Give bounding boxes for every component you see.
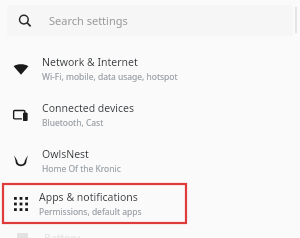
staticText: Bluetooth, Cast xyxy=(42,117,104,129)
button[interactable]: Network and Internet xyxy=(0,46,300,92)
staticText: Home Of the Kronic xyxy=(42,163,121,175)
staticText: Connected devices xyxy=(42,101,135,115)
staticText: OwlsNest xyxy=(42,147,89,161)
staticText: Search settings xyxy=(49,13,128,28)
other: Search xyxy=(18,14,32,28)
staticText: Apps & notifications xyxy=(39,190,138,204)
button[interactable]: Connected devices xyxy=(0,92,300,138)
button[interactable]: Battery xyxy=(0,231,300,238)
staticText: Battery xyxy=(44,231,80,238)
button[interactable]: Apps and notifications xyxy=(3,184,186,223)
staticText: Network & Internet xyxy=(42,55,138,69)
button[interactable]: Search xyxy=(7,5,293,36)
other: Connected devices xyxy=(13,107,29,123)
button[interactable]: OwlsNest xyxy=(0,138,300,184)
other: Apps and notifications xyxy=(14,197,28,211)
staticText: Wi-Fi, mobile, data usage, hotspot xyxy=(42,71,178,83)
other: Network and Internet xyxy=(13,61,29,77)
staticText: Permissions, default apps xyxy=(39,206,142,218)
other: OwlsNest xyxy=(13,153,29,169)
